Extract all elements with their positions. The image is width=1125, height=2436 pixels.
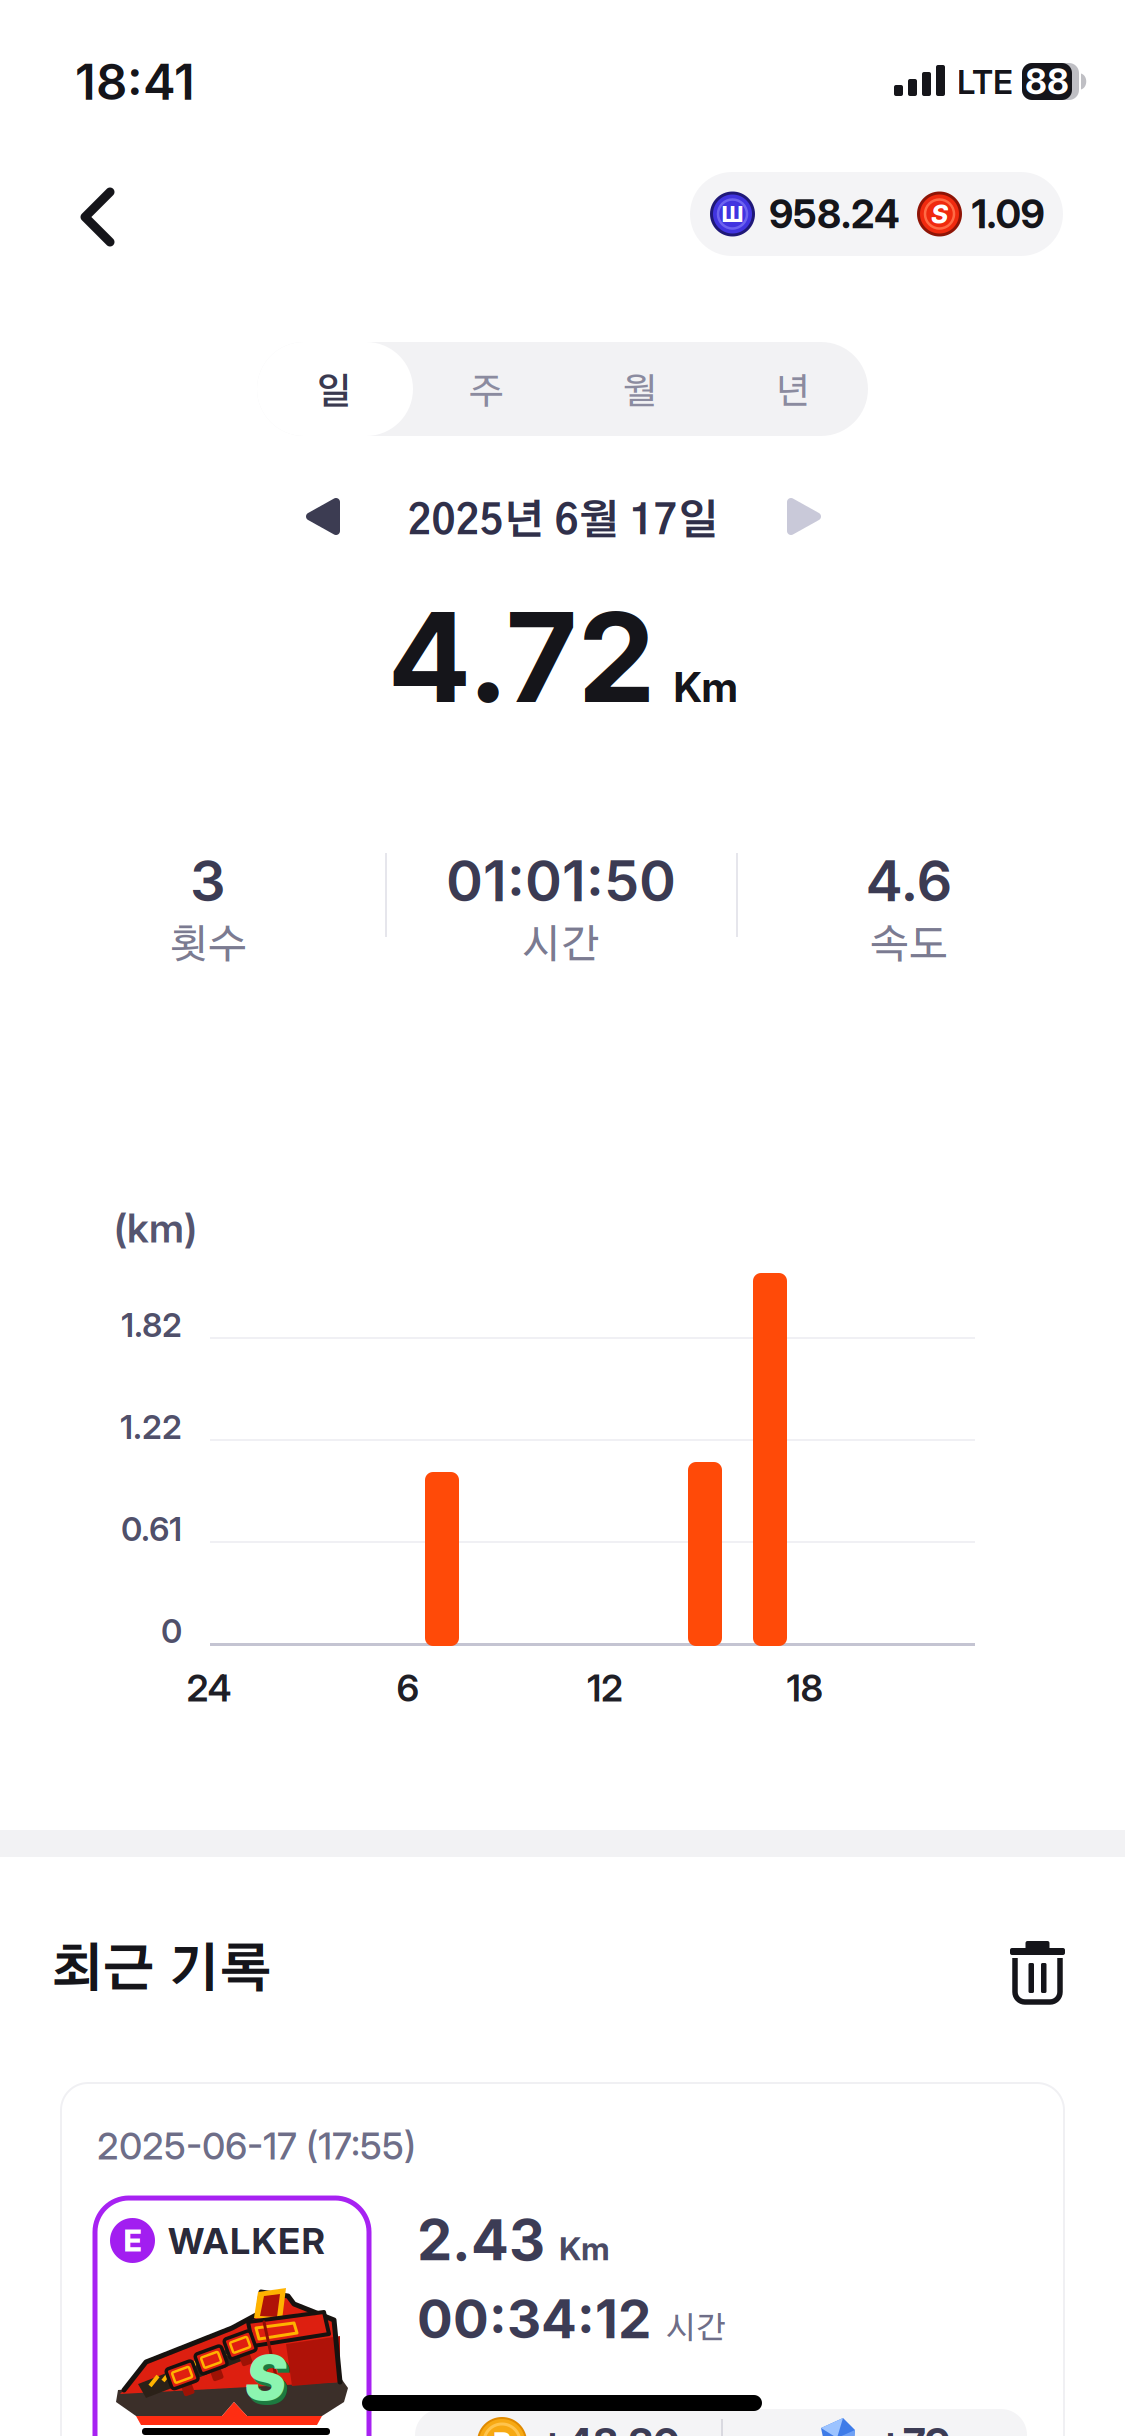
staticText: 12: [587, 1666, 623, 1710]
staticText: LTE: [957, 62, 1013, 102]
button[interactable]: 월: [563, 342, 716, 436]
staticText: 6: [396, 1666, 419, 1710]
staticText: 4.72: [387, 582, 655, 732]
staticText: 횟수: [169, 926, 247, 966]
staticText: 2025년 6월 17일: [407, 501, 718, 542]
button[interactable]: 주: [410, 342, 563, 436]
button[interactable]: Previous day: [299, 491, 347, 542]
staticText: S: [245, 2340, 286, 2415]
staticText: 1.09: [971, 190, 1044, 238]
button[interactable]: 2025-06-17 (17:55): [60, 2082, 1065, 2436]
staticText: 00:34:12: [417, 2287, 651, 2351]
staticText: 일: [316, 375, 351, 411]
staticText: 01:01:50: [446, 847, 676, 915]
staticText: +79: [877, 2418, 950, 2436]
staticText: 시간: [666, 2314, 726, 2345]
staticText: 년: [775, 375, 810, 411]
staticText: 0.61: [121, 1509, 182, 1549]
staticText: 월: [622, 375, 657, 411]
staticText: Km: [673, 662, 737, 712]
staticText: Km: [559, 2229, 610, 2268]
staticText: 시간: [522, 926, 600, 966]
staticText: WALKER: [168, 2219, 324, 2263]
staticText: S: [248, 2344, 289, 2419]
staticText: 4.6: [865, 847, 952, 915]
staticText: 2025-06-17 (17:55): [97, 2124, 416, 2168]
staticText: 최근 기록: [51, 1945, 272, 1997]
staticText: Ш: [721, 201, 743, 227]
staticText: 2.43: [417, 2206, 545, 2274]
staticText: (km): [114, 1204, 197, 1252]
staticText: 88: [1025, 60, 1069, 103]
staticText: 3: [190, 847, 226, 915]
button[interactable]: Delete records: [1002, 1933, 1073, 2010]
staticText: 1.82: [121, 1305, 182, 1345]
staticText: B: [493, 2425, 511, 2436]
button[interactable]: 일: [257, 342, 410, 436]
staticText: 18:41: [75, 52, 195, 112]
staticText: 주: [469, 375, 504, 411]
staticText: 958.24: [769, 190, 900, 238]
staticText: 1.22: [120, 1407, 182, 1447]
staticText: E: [123, 2222, 141, 2259]
button[interactable]: Ш: [690, 172, 1063, 256]
staticText: 18: [786, 1666, 823, 1710]
button[interactable]: Back: [63, 180, 133, 254]
button[interactable]: 년: [716, 342, 869, 436]
staticText: 속도: [870, 926, 948, 966]
staticText: +48.30: [539, 2418, 680, 2436]
staticText: 0: [161, 1611, 182, 1651]
staticText: 24: [186, 1666, 231, 1710]
staticText: S: [931, 198, 948, 230]
button[interactable]: Next day: [780, 491, 828, 542]
